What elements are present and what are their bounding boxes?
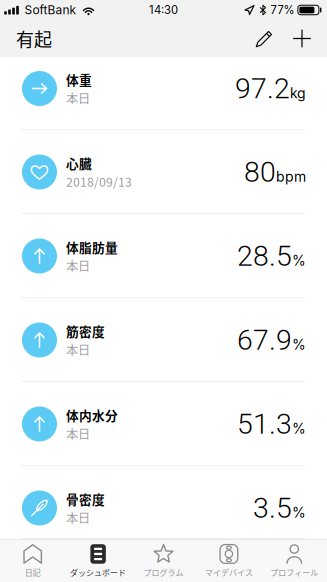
staticText: % [292,336,306,353]
staticText: 体重 [66,70,92,88]
button[interactable]: Add [283,20,321,56]
staticText: 有起 [16,25,52,52]
button[interactable]: 体脂肪量 [0,214,327,298]
button[interactable]: 日記 [0,539,65,582]
staticText: % [292,504,306,521]
staticText: マイデバイス [205,566,253,578]
staticText: 3.5 [253,491,292,525]
button[interactable]: 骨密度 [0,466,327,539]
staticText: プロフィール [270,566,318,578]
button[interactable]: Edit [245,20,283,56]
button[interactable]: 心臓 [0,130,327,214]
button[interactable]: マイデバイス [196,539,262,582]
staticText: 日記 [25,566,41,578]
button[interactable]: ダッシュボード [65,539,131,582]
staticText: SoftBank [24,3,76,17]
button[interactable]: 体内水分 [0,382,327,466]
staticText: 本日 [66,256,90,274]
staticText: 本日 [66,508,90,526]
staticText: 体内水分 [66,406,118,424]
staticText: 筋密度 [66,322,105,340]
staticText: 本日 [66,340,90,358]
staticText: 97.2 [235,72,290,105]
staticText: 28.5 [237,239,292,273]
button[interactable]: プロフィール [262,539,327,582]
staticText: % [292,420,306,437]
staticText: kg [290,85,306,101]
button[interactable]: 体重 [0,57,327,130]
staticText: bpm [276,168,306,185]
staticText: 77% [270,3,294,17]
staticText: 51.3 [237,407,292,441]
staticText: 80 [244,155,276,189]
staticText: 14:30 [149,3,178,17]
staticText: 67.9 [237,323,292,357]
staticText: ダッシュボード [70,566,126,578]
staticText: 2018/09/13 [66,172,132,190]
staticText: プログラム [143,566,183,578]
staticText: 体脂肪量 [66,238,118,256]
staticText: 骨密度 [66,490,105,508]
staticText: 心臓 [66,154,92,172]
staticText: 本日 [66,89,90,107]
staticText: % [292,252,306,269]
button[interactable]: プログラム [131,539,196,582]
button[interactable]: 筋密度 [0,298,327,382]
staticText: 本日 [66,424,90,442]
